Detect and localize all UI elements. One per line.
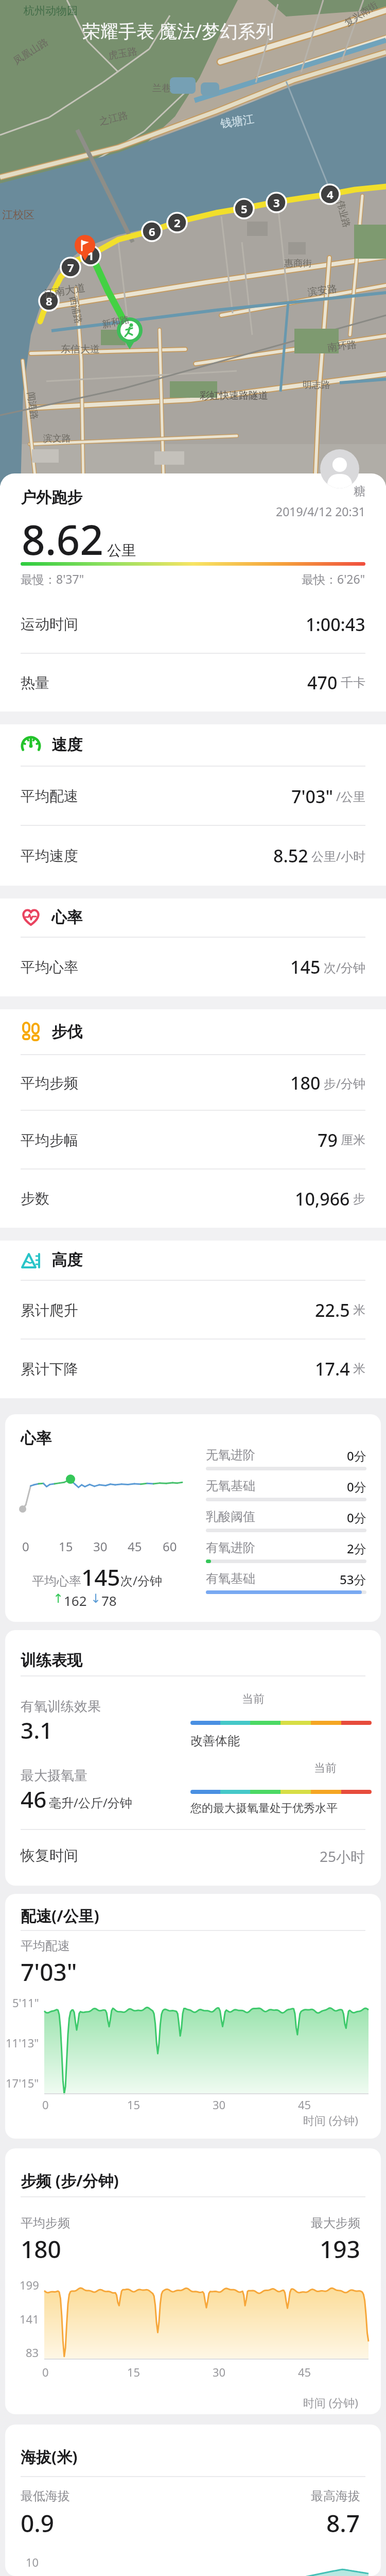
staticText: 时间 (分钟): [303, 2112, 358, 2128]
button[interactable]: 步数: [0, 1170, 386, 1228]
staticText: 高度: [51, 1250, 82, 1270]
staticText: ↓: [91, 1591, 101, 1606]
staticText: 之江路: [98, 109, 129, 128]
staticText: 平均配速: [21, 787, 78, 805]
staticText: 2: [174, 215, 181, 230]
staticText: 46: [21, 1784, 47, 1815]
staticText: 彩虹快速路隧道: [200, 389, 268, 402]
staticText: 凤凰山路: [11, 36, 51, 67]
button[interactable]: 平均步频: [0, 1055, 386, 1111]
button[interactable]: 累计爬升: [0, 1281, 386, 1340]
staticText: 2019/4/12 20:31: [276, 503, 365, 519]
staticText: 杭州动物园: [24, 4, 78, 18]
staticText: 南环路: [327, 338, 357, 354]
staticText: 7: [67, 260, 74, 275]
staticText: 滨文路: [43, 433, 71, 445]
staticText: 钱塘江: [219, 112, 255, 131]
button[interactable]: 热量: [0, 654, 386, 711]
staticText: 恢复时间: [21, 1846, 78, 1865]
staticText: 有氧进阶: [206, 1540, 255, 1555]
staticText: 0: [42, 2364, 49, 2380]
staticText: ↑: [53, 1591, 64, 1606]
staticText: 千卡: [341, 675, 365, 690]
staticText: 78: [101, 1591, 117, 1609]
staticText: 虎玉路: [107, 45, 138, 62]
staticText: 户外跑步: [21, 488, 82, 507]
staticText: 5'11": [12, 1995, 39, 2010]
button[interactable]: 心率: [5, 1414, 381, 1622]
staticText: 8.52: [273, 844, 308, 868]
staticText: 83: [26, 2345, 39, 2360]
button[interactable]: 平均心率: [0, 938, 386, 996]
staticText: 8.7: [326, 2507, 360, 2539]
button[interactable]: 运动时间: [0, 595, 386, 654]
staticText: 有氧训练效果: [21, 1698, 101, 1715]
staticText: 公里: [107, 541, 136, 560]
staticText: 心率: [21, 1429, 51, 1448]
staticText: 17'15": [6, 2075, 39, 2091]
staticText: 运动时间: [21, 615, 78, 633]
staticText: 45: [128, 1538, 142, 1555]
staticText: 闻涛路: [25, 391, 40, 420]
staticText: 江南大道: [43, 281, 86, 300]
staticText: /公里: [336, 788, 365, 805]
staticText: 滨安路: [307, 282, 338, 299]
staticText: 米: [353, 1361, 365, 1377]
staticText: 步数: [21, 1190, 49, 1208]
staticText: 平均配速: [21, 1938, 70, 1954]
staticText: 162: [64, 1591, 91, 1609]
staticText: 改善体能: [190, 1733, 240, 1749]
staticText: 3.1: [21, 1715, 53, 1745]
staticText: 公里/小时: [311, 848, 365, 865]
staticText: 79: [318, 1128, 338, 1152]
button[interactable]: 配速(/公里): [5, 1894, 381, 2139]
staticText: 配速(/公里): [21, 1905, 99, 1926]
staticText: 15: [127, 2364, 141, 2380]
staticText: 7'03": [291, 785, 333, 808]
staticText: 30: [213, 2097, 226, 2112]
staticText: 22.5: [315, 1298, 350, 1322]
staticText: 累计下降: [21, 1360, 78, 1378]
staticText: 兰巷: [152, 82, 171, 94]
staticText: 厘米: [341, 1132, 365, 1148]
staticText: 最低海拔: [21, 2488, 70, 2504]
staticText: 时间 (分钟): [303, 2395, 358, 2410]
staticText: 0.9: [21, 2507, 55, 2539]
staticText: 199: [20, 2277, 39, 2293]
staticText: 平均步幅: [21, 1131, 78, 1149]
staticText: 训练表现: [21, 1651, 82, 1670]
staticText: 0分: [347, 1478, 366, 1495]
staticText: 7'03": [21, 1956, 77, 1988]
staticText: 45: [298, 2364, 311, 2380]
staticText: 180: [290, 1071, 321, 1095]
staticText: 11'13": [6, 2035, 39, 2050]
button[interactable]: 训练表现: [5, 1630, 381, 1886]
staticText: 东信大道: [61, 343, 100, 355]
staticText: 17.4: [315, 1357, 350, 1381]
staticText: 6: [149, 224, 155, 239]
staticText: 平均心率: [32, 1573, 81, 1589]
staticText: 最慢：8'37": [21, 571, 84, 587]
staticText: 次/分钟: [324, 959, 365, 976]
staticText: 西浦路: [67, 295, 84, 325]
staticText: 10: [26, 2554, 39, 2570]
button[interactable]: 海拔(米): [5, 2425, 381, 2576]
button[interactable]: 步频 (步/分钟): [5, 2148, 381, 2414]
staticText: 最高海拔: [311, 2488, 360, 2504]
staticText: 145: [290, 955, 321, 979]
staticText: 15: [59, 1538, 73, 1555]
button[interactable]: 累计下降: [0, 1340, 386, 1398]
staticText: 步伐: [51, 1022, 82, 1042]
staticText: 米: [353, 1302, 365, 1318]
staticText: 当前: [314, 1761, 337, 1775]
staticText: 0分: [347, 1447, 366, 1464]
staticText: 4: [327, 187, 334, 202]
staticText: 最快：6'26": [302, 571, 365, 587]
button[interactable]: 平均步幅: [0, 1111, 386, 1170]
staticText: 2分: [347, 1540, 366, 1557]
button[interactable]: 平均速度: [0, 826, 386, 886]
staticText: 10,966: [295, 1187, 350, 1211]
staticText: 江校区: [2, 208, 34, 222]
staticText: 15: [127, 2097, 141, 2112]
button[interactable]: 平均配速: [0, 767, 386, 826]
